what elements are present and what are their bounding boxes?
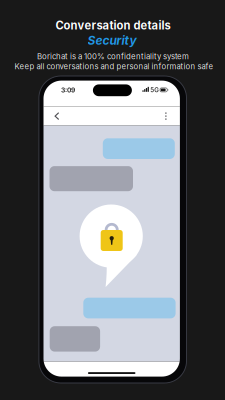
button[interactable]: Back <box>49 108 65 124</box>
button[interactable]: More options <box>159 108 173 124</box>
staticText: Keep all conversations and personal info… <box>14 62 213 71</box>
staticText: 5G <box>150 86 159 94</box>
staticText: Security <box>87 33 136 47</box>
staticText: Conversation details <box>55 19 170 32</box>
staticText: Borichat is a 100% confidentiality syste… <box>37 52 189 61</box>
staticText: 3:09 <box>61 86 75 94</box>
